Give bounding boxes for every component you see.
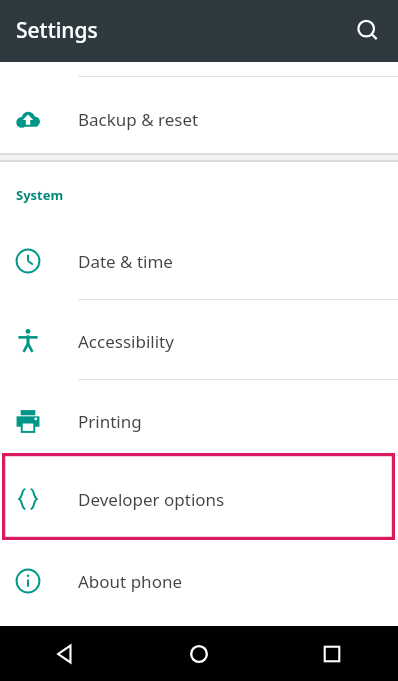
staticText: Date & time xyxy=(78,250,173,273)
button[interactable]: Printing xyxy=(0,382,398,460)
button[interactable]: Back xyxy=(0,626,132,681)
button[interactable]: Accessibility xyxy=(0,302,398,380)
button[interactable]: Search xyxy=(342,5,394,57)
button[interactable]: Backup & reset xyxy=(0,80,398,158)
button[interactable]: Home xyxy=(132,626,265,681)
staticText: Settings xyxy=(16,16,98,45)
button[interactable]: Recent apps xyxy=(265,626,398,681)
staticText: System xyxy=(16,186,64,204)
staticText: About phone xyxy=(78,570,183,593)
staticText: Backup & reset xyxy=(78,108,199,131)
staticText: Accessibility xyxy=(78,330,174,353)
button[interactable]: Developer options xyxy=(0,460,398,538)
staticText: Printing xyxy=(78,410,142,433)
staticText: Developer options xyxy=(78,488,225,511)
button[interactable]: Date & time xyxy=(0,222,398,300)
button[interactable]: About phone xyxy=(0,542,398,620)
